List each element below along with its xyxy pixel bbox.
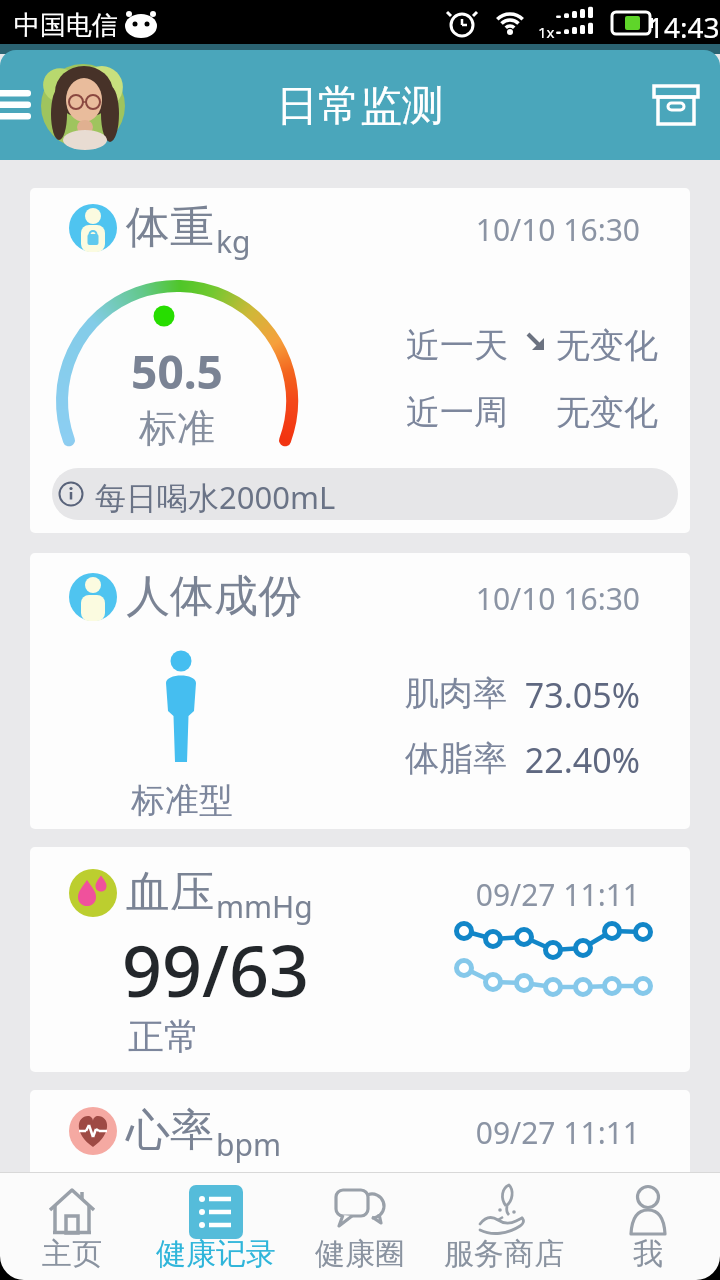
staticText: 每日喝水2000mL — [95, 476, 336, 518]
button[interactable] — [30, 553, 690, 829]
button[interactable] — [30, 847, 690, 1072]
staticText: 心率 — [126, 1103, 214, 1158]
staticText: mmHg — [216, 886, 313, 927]
staticText: 肌肉率 — [405, 672, 507, 715]
staticText: 日常监测 — [0, 80, 720, 133]
staticText: 无变化 — [556, 324, 658, 367]
staticText: 服务商店 — [432, 1235, 576, 1273]
staticText: 近一天 — [406, 324, 508, 367]
staticText: 标准 — [77, 404, 277, 452]
staticText: kg — [216, 221, 251, 262]
staticText: 健康圈 — [288, 1235, 432, 1273]
staticText: 09/27 11:11 — [400, 874, 640, 915]
staticText: 体重 — [126, 200, 214, 255]
button[interactable] — [52, 468, 678, 520]
staticText: 10/10 16:30 — [400, 209, 640, 250]
button[interactable]: 健康圈 — [288, 1172, 432, 1280]
staticText: 主页 — [0, 1235, 144, 1273]
staticText: 近一周 — [406, 391, 508, 434]
button[interactable]: 我 — [576, 1172, 720, 1280]
button[interactable] — [0, 50, 720, 160]
staticText: 我 — [576, 1235, 720, 1273]
staticText: 73.05% — [440, 672, 640, 718]
staticText: 标准型 — [131, 779, 233, 822]
staticText: 中国电信 — [14, 9, 118, 42]
button[interactable]: 主页 — [0, 1172, 144, 1280]
staticText: 正常 — [128, 1014, 200, 1059]
staticText: 健康记录 — [144, 1235, 288, 1273]
staticText: 人体成份 — [126, 569, 302, 624]
staticText: 14:43 — [648, 8, 720, 46]
staticText: 50.5 — [77, 340, 277, 403]
button[interactable] — [30, 188, 690, 533]
staticText: 无变化 — [556, 391, 658, 434]
button[interactable]: 服务商店 — [432, 1172, 576, 1280]
button[interactable] — [30, 1090, 690, 1172]
staticText: 1x — [538, 22, 555, 42]
staticText: 10/10 16:30 — [400, 578, 640, 619]
staticText: 09/27 11:11 — [400, 1112, 640, 1153]
staticText: 血压 — [126, 865, 214, 920]
staticText: 99/63 — [122, 922, 310, 1017]
staticText: 22.40% — [440, 737, 640, 783]
button[interactable] — [41, 64, 125, 148]
staticText: bpm — [216, 1124, 281, 1165]
button[interactable]: 健康记录 — [144, 1172, 288, 1280]
staticText: 体脂率 — [405, 737, 507, 780]
